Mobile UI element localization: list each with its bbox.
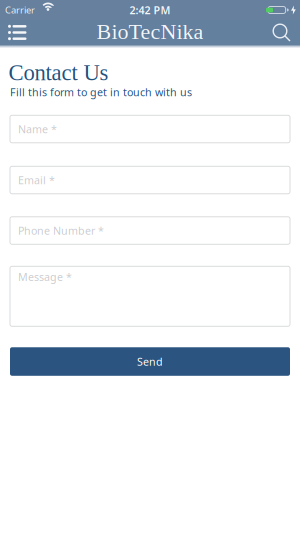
staticText: Email * xyxy=(18,173,55,187)
staticText: Send xyxy=(137,354,163,369)
staticText: 2:42 PM xyxy=(129,3,170,17)
staticText: BioTecNika xyxy=(96,19,203,44)
staticText: Contact Us xyxy=(8,60,108,85)
staticText: Carrier xyxy=(5,4,35,16)
staticText: Phone Number * xyxy=(18,223,104,238)
button[interactable]: Menu xyxy=(4,20,34,44)
staticText: Name * xyxy=(18,122,57,136)
button[interactable]: Send xyxy=(10,347,290,376)
staticText: Fill this form to get in touch with us xyxy=(10,85,192,99)
button[interactable]: Name * xyxy=(10,115,290,143)
button[interactable]: Phone Number * xyxy=(10,217,290,244)
staticText: Message * xyxy=(18,270,72,284)
button[interactable]: Search xyxy=(266,20,296,44)
button[interactable]: Email * xyxy=(10,166,290,194)
button[interactable]: Message * xyxy=(10,266,290,326)
